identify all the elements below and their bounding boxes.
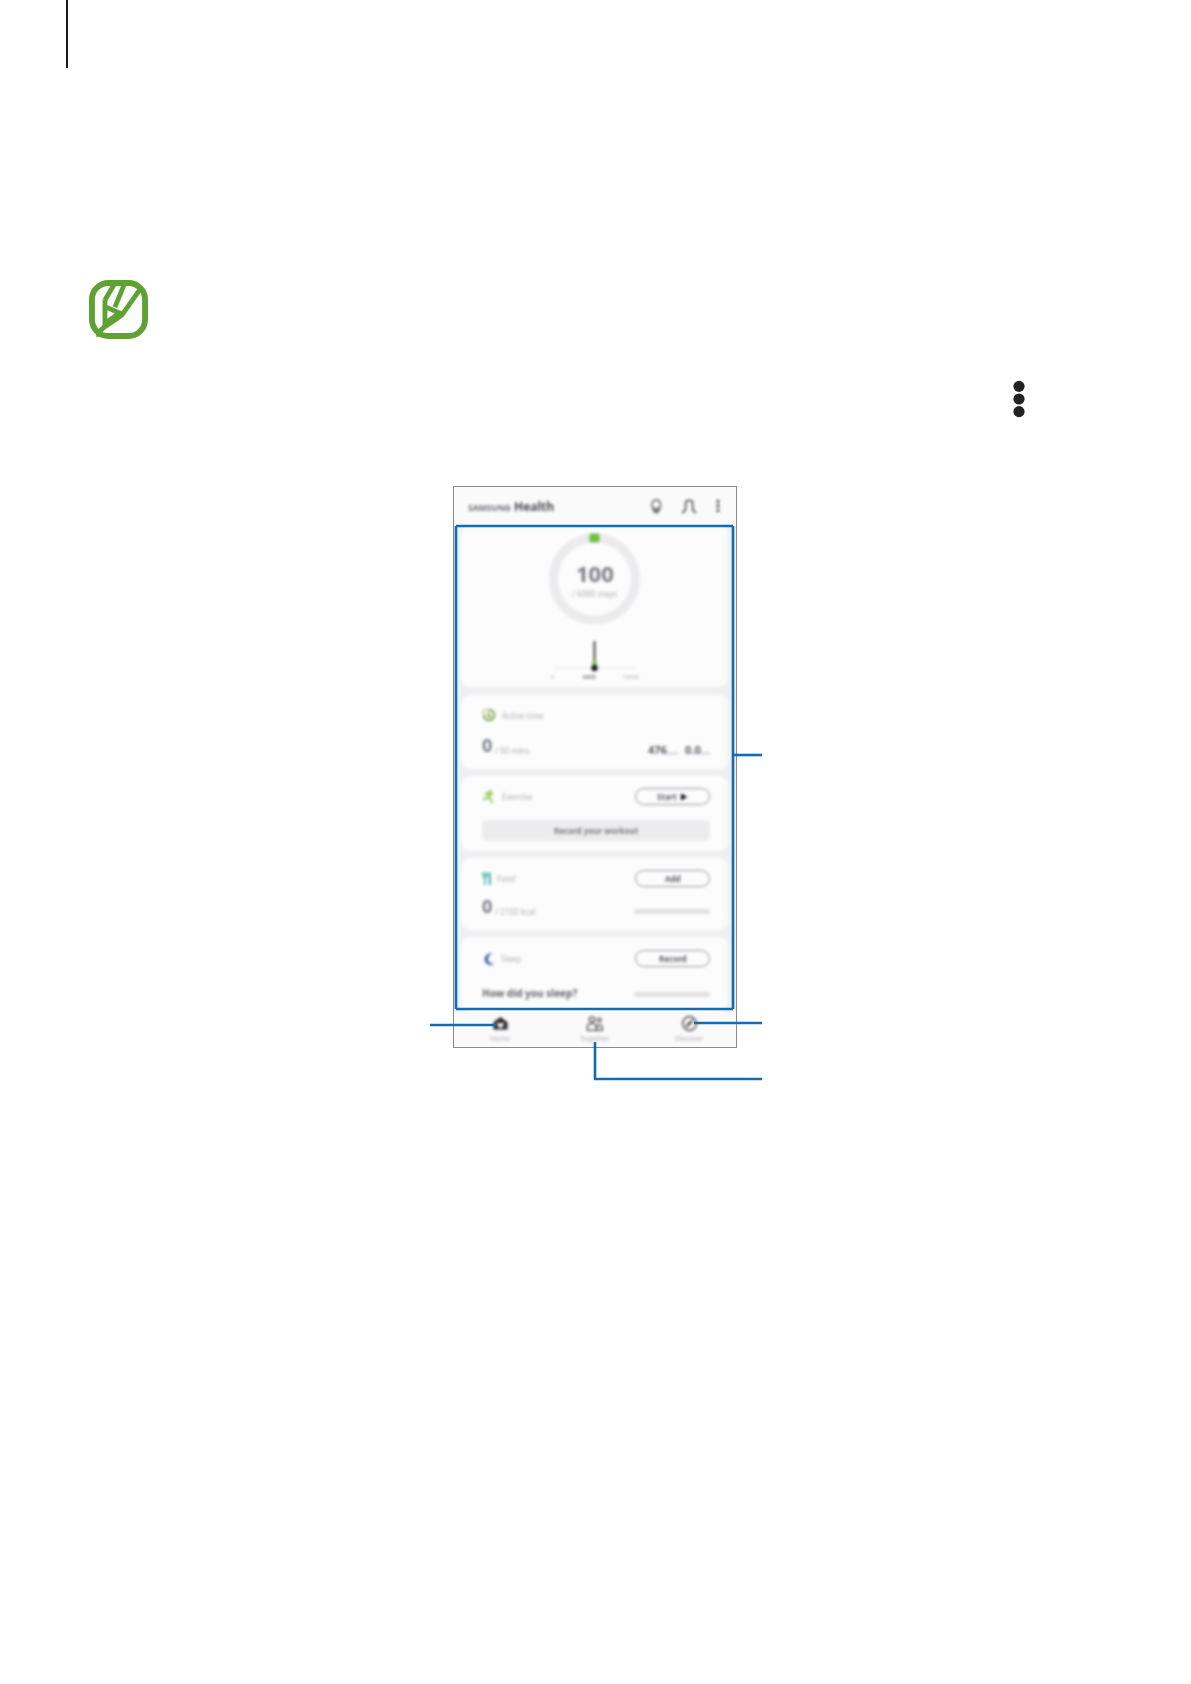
button[interactable]: Together	[547, 1012, 642, 1048]
staticText: SAMSUNG	[468, 502, 511, 514]
staticText: Start	[657, 791, 677, 802]
staticText: Home	[490, 1034, 510, 1044]
button[interactable]: Exercise	[461, 776, 728, 851]
button[interactable]: More options	[709, 497, 727, 515]
button[interactable]: Profile	[677, 494, 701, 518]
staticText: Add	[665, 873, 681, 884]
staticText: / 6000 steps	[572, 588, 618, 599]
button[interactable]: Active time	[461, 695, 728, 769]
staticText: 0	[551, 673, 555, 680]
button[interactable]: More options	[1006, 378, 1032, 420]
button[interactable]: 100	[461, 525, 728, 687]
staticText: How did you sleep?	[482, 986, 578, 1000]
staticText: Discover	[675, 1034, 704, 1044]
staticText: Record your workout	[554, 825, 639, 836]
button[interactable]: Home	[453, 1012, 547, 1048]
staticText: Exercise	[502, 791, 533, 802]
staticText: 0	[482, 733, 493, 758]
button[interactable]: Food	[461, 858, 728, 930]
staticText: Sleep	[501, 953, 522, 964]
button[interactable]: Sleep	[461, 937, 728, 1012]
staticText: 100	[576, 558, 614, 588]
staticText: / 2150 kcal	[495, 906, 536, 917]
button[interactable]: Record your workout	[482, 820, 710, 841]
button[interactable]: Start	[635, 788, 710, 805]
staticText: kcal	[667, 749, 678, 757]
staticText: 0	[482, 894, 493, 919]
button[interactable]: Record	[635, 950, 710, 967]
button[interactable]: Tips	[644, 494, 668, 518]
staticText: 6000	[583, 673, 596, 680]
staticText: 0.0	[685, 742, 701, 757]
button[interactable]: Add	[635, 870, 710, 887]
staticText: Food	[497, 873, 516, 884]
staticText: / 90 mins	[495, 745, 530, 756]
staticText: Active time	[502, 710, 544, 721]
button[interactable]: Discover	[642, 1012, 737, 1048]
staticText: Record	[659, 953, 687, 964]
staticText: Together	[580, 1034, 610, 1044]
staticText: 10000	[623, 673, 639, 680]
staticText: 476	[648, 742, 667, 757]
staticText: km	[701, 749, 710, 757]
staticText: Health	[514, 498, 555, 514]
